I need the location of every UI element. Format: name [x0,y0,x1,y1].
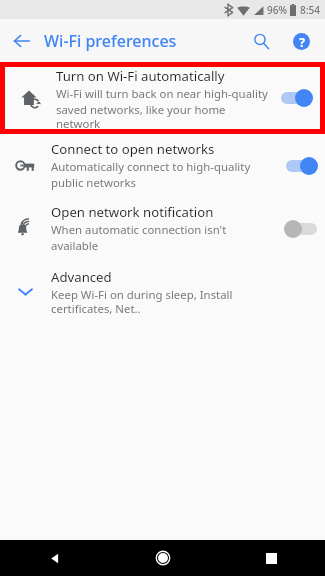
other: Notification [16,219,35,238]
staticText: public networks [51,175,137,191]
button[interactable]: Recent apps [217,540,325,576]
button[interactable]: Help [281,21,321,61]
other: Key [16,156,35,175]
button[interactable]: Toggle on [284,156,318,176]
staticText: Wi-Fi will turn back on near high-qualit… [56,86,268,102]
button[interactable]: Expand advanced [0,260,325,323]
button[interactable]: Search [241,21,281,61]
staticText: 96% [267,3,287,17]
button[interactable]: Home sync [5,67,320,129]
staticText: When automatic connection isn't [51,222,227,238]
staticText: available [51,238,99,254]
button[interactable]: Home [109,540,217,576]
button[interactable]: Toggle off [284,219,318,239]
button[interactable]: Back [0,19,44,62]
button[interactable]: Back [0,540,109,576]
staticText: ? [299,34,305,50]
staticText: saved networks, like your home network [56,102,272,129]
staticText: Advanced [51,268,112,286]
button[interactable]: Notification [0,197,325,260]
staticText: Turn on Wi-Fi automatically [56,67,225,85]
staticText: 8:54 [300,3,320,17]
button[interactable]: Toggle on [279,88,313,108]
button[interactable]: Key [0,134,325,197]
other: Expand advanced [16,282,35,301]
staticText: Wi-Fi preferences [44,30,177,52]
staticText: Keep Wi-Fi on during sleep, Install cert… [51,287,277,316]
staticText: Connect to open networks [51,140,215,158]
staticText: Automatically connect to high-quality [51,159,251,175]
other: Home sync [21,89,40,108]
staticText: Open network notification [51,203,214,221]
